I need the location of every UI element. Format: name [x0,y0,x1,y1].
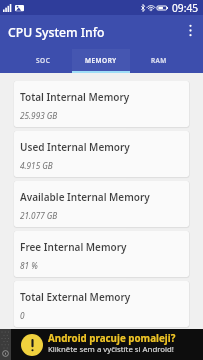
button[interactable]: MEMORY [72,49,130,73]
staticText: 81 % [20,260,38,271]
button[interactable]: RAM [130,49,188,73]
button[interactable]: Free Internal Memory [14,231,189,277]
button[interactable]: Used Internal Memory [14,131,189,177]
staticText: MEMORY [85,56,117,65]
button[interactable]: Available Internal Memory [14,181,189,227]
staticText: 25.993 GB [20,110,58,121]
button[interactable]: Total External Memory [14,281,189,327]
button[interactable]: Total Internal Memory [14,81,189,127]
staticText: 21.077 GB [20,210,58,221]
staticText: 09:45 [172,1,199,15]
button[interactable]: More options [175,18,203,46]
button[interactable]: Android pracuje pomaleji? [0,329,203,360]
staticText: Android pracuje pomaleji? [48,332,176,345]
staticText: Total Internal Memory [20,90,130,104]
staticText: SOC [36,56,51,65]
button[interactable]: SOC [15,49,72,73]
staticText: Klikněte sem a vyčistíte si Android! [48,344,174,355]
staticText: 4.915 GB [20,160,53,171]
staticText: Free Internal Memory [20,240,127,254]
staticText: Available Internal Memory [20,190,150,204]
staticText: Used Internal Memory [20,140,130,154]
staticText: RAM [151,56,167,65]
staticText: 0 [20,310,25,321]
staticText: Total External Memory [20,290,131,304]
staticText: CPU System Info [8,24,105,41]
